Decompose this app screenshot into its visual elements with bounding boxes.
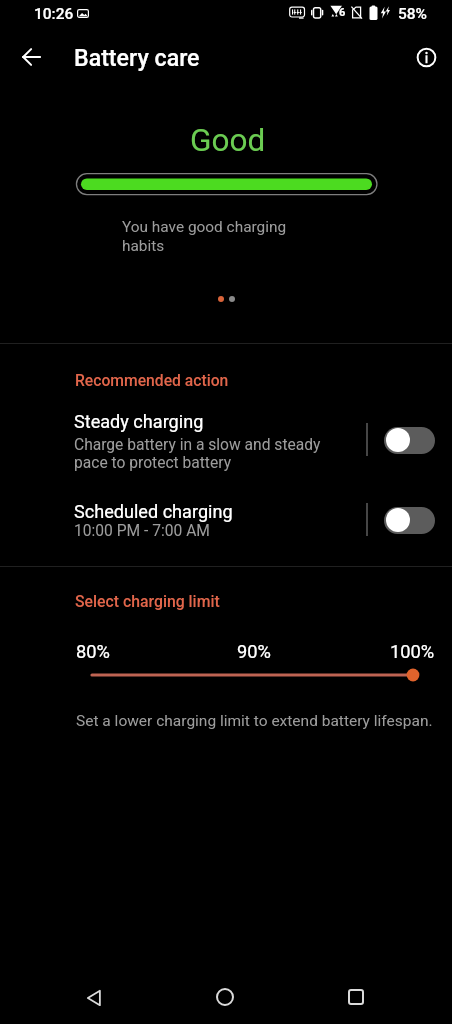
- staticText: Recommended action: [75, 371, 229, 389]
- staticText: You have good charging habits: [122, 218, 287, 255]
- staticText: Battery care: [74, 44, 200, 71]
- staticText: 100%: [390, 641, 435, 662]
- button[interactable]: Scheduled charging: [0, 490, 452, 546]
- staticText: Set a lower charging limit to extend bat…: [76, 712, 433, 730]
- staticText: Steady charging: [74, 411, 204, 432]
- button[interactable]: Scheduled charging toggle: [380, 502, 440, 538]
- staticText: Charge battery in a slow and steady pace…: [74, 436, 321, 472]
- staticText: 10:00 PM - 7:00 AM: [74, 522, 210, 540]
- staticText: 6: [339, 6, 346, 19]
- staticText: 10:26: [34, 5, 74, 23]
- staticText: 80%: [76, 641, 110, 662]
- button[interactable]: Charging limit slider: [76, 661, 436, 689]
- staticText: Select charging limit: [75, 592, 220, 611]
- staticText: Good: [190, 122, 266, 159]
- button[interactable]: Back: [70, 974, 118, 1022]
- button[interactable]: Recent apps: [332, 973, 380, 1021]
- staticText: 90%: [237, 641, 271, 662]
- staticText: Scheduled charging: [74, 501, 233, 522]
- button[interactable]: Back: [7, 33, 55, 81]
- button[interactable]: Info: [402, 33, 450, 81]
- button[interactable]: Steady charging toggle: [380, 422, 440, 458]
- button[interactable]: Steady charging: [0, 400, 452, 479]
- button[interactable]: Home: [201, 973, 249, 1021]
- staticText: 58%: [398, 5, 428, 23]
